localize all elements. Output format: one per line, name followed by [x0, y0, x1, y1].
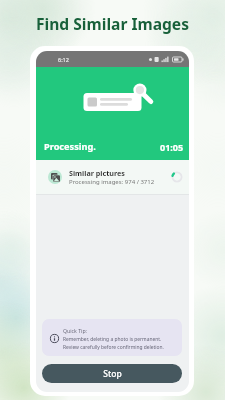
staticText: Similar pictures: [69, 168, 125, 178]
staticText: 01:05: [160, 141, 184, 153]
button[interactable]: Stop: [42, 364, 182, 383]
staticText: Processing.: [44, 140, 96, 153]
button[interactable]: Similar pictures: [36, 160, 189, 194]
staticText: Find Similar Images: [36, 13, 190, 34]
staticText: Stop: [103, 368, 122, 380]
staticText: 6:12: [58, 56, 69, 63]
staticText: Review carefully before confirming delet…: [63, 344, 164, 351]
staticText: Quick Tip:: [63, 327, 88, 334]
staticText: Processing images: 974 / 3712: [69, 178, 155, 186]
staticText: Remember, deleting a photo is permanent.: [63, 336, 162, 343]
